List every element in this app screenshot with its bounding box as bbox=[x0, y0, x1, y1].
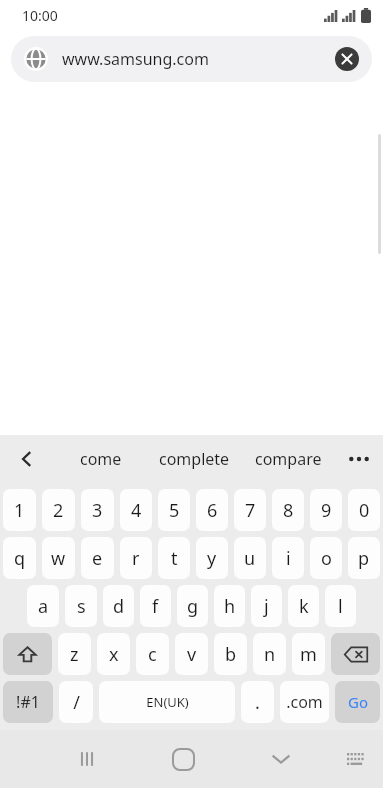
button[interactable]: 2 bbox=[42, 489, 75, 531]
button[interactable]: k bbox=[288, 585, 319, 627]
staticText: e bbox=[92, 546, 103, 571]
button[interactable]: 0 bbox=[348, 489, 380, 531]
button[interactable]: i bbox=[272, 537, 304, 579]
button[interactable]: a bbox=[27, 585, 59, 627]
staticText: / bbox=[73, 690, 80, 715]
staticText: 1 bbox=[14, 498, 25, 523]
button[interactable]: Change keyboard bbox=[329, 730, 383, 788]
button[interactable]: Recents bbox=[38, 730, 135, 788]
button[interactable]: 1 bbox=[3, 489, 36, 531]
button[interactable]: e bbox=[81, 537, 114, 579]
staticText: y bbox=[207, 546, 217, 571]
button[interactable]: u bbox=[234, 537, 266, 579]
staticText: w bbox=[51, 546, 66, 571]
staticText: v bbox=[187, 642, 197, 667]
staticText: . bbox=[255, 690, 260, 715]
button[interactable]: compare bbox=[241, 435, 335, 483]
button[interactable]: www.samsung.com bbox=[11, 36, 372, 82]
staticText: 3 bbox=[92, 498, 103, 523]
button[interactable]: !#1 bbox=[3, 681, 53, 723]
button[interactable]: v bbox=[175, 633, 208, 675]
staticText: k bbox=[299, 594, 309, 619]
staticText: 4 bbox=[131, 498, 142, 523]
staticText: f bbox=[152, 594, 159, 619]
button[interactable]: 5 bbox=[158, 489, 190, 531]
staticText: 7 bbox=[245, 498, 256, 523]
staticText: h bbox=[224, 594, 236, 619]
button[interactable]: x bbox=[97, 633, 130, 675]
staticText: compare bbox=[255, 448, 322, 470]
staticText: 6 bbox=[207, 498, 218, 523]
staticText: i bbox=[286, 546, 291, 571]
button[interactable]: d bbox=[103, 585, 134, 627]
button[interactable]: f bbox=[140, 585, 171, 627]
button[interactable]: q bbox=[3, 537, 36, 579]
staticText: u bbox=[244, 546, 256, 571]
button[interactable]: / bbox=[59, 681, 93, 723]
button[interactable]: b bbox=[214, 633, 247, 675]
button[interactable]: s bbox=[65, 585, 97, 627]
staticText: .com bbox=[286, 691, 323, 713]
staticText: b bbox=[225, 642, 237, 667]
staticText: complete bbox=[159, 448, 230, 470]
staticText: 10:00 bbox=[22, 6, 58, 25]
staticText: n bbox=[264, 642, 276, 667]
staticText: j bbox=[264, 594, 269, 619]
button[interactable]: EN(UK) bbox=[99, 681, 235, 723]
staticText: o bbox=[321, 546, 332, 571]
button[interactable]: Clear bbox=[334, 46, 360, 72]
staticText: p bbox=[358, 546, 370, 571]
button[interactable]: j bbox=[251, 585, 282, 627]
staticText: l bbox=[338, 594, 343, 619]
staticText: t bbox=[171, 546, 178, 571]
button[interactable]: Shift bbox=[3, 633, 52, 675]
button[interactable]: Go bbox=[335, 681, 380, 723]
staticText: a bbox=[38, 594, 49, 619]
button[interactable]: t bbox=[158, 537, 190, 579]
staticText: z bbox=[70, 642, 79, 667]
button[interactable]: Backspace bbox=[331, 633, 380, 675]
button[interactable]: 4 bbox=[120, 489, 152, 531]
button[interactable]: g bbox=[177, 585, 208, 627]
button[interactable]: r bbox=[120, 537, 152, 579]
button[interactable]: complete bbox=[147, 435, 241, 483]
button[interactable]: . bbox=[241, 681, 274, 723]
button[interactable]: h bbox=[214, 585, 245, 627]
button[interactable]: p bbox=[348, 537, 380, 579]
button[interactable]: 9 bbox=[310, 489, 342, 531]
button[interactable]: l bbox=[325, 585, 356, 627]
staticText: g bbox=[187, 594, 199, 619]
staticText: 5 bbox=[169, 498, 180, 523]
staticText: 0 bbox=[359, 498, 370, 523]
staticText: come bbox=[80, 448, 122, 470]
staticText: 2 bbox=[53, 498, 64, 523]
button[interactable]: 8 bbox=[272, 489, 304, 531]
button[interactable]: Hide keyboard bbox=[232, 730, 329, 788]
button[interactable]: o bbox=[310, 537, 342, 579]
button[interactable]: z bbox=[58, 633, 91, 675]
staticText: m bbox=[300, 642, 317, 667]
staticText: r bbox=[132, 546, 140, 571]
staticText: 9 bbox=[321, 498, 332, 523]
staticText: Go bbox=[348, 692, 368, 712]
button[interactable]: 7 bbox=[234, 489, 266, 531]
staticText: !#1 bbox=[16, 691, 40, 713]
button[interactable]: m bbox=[292, 633, 325, 675]
button[interactable]: More options bbox=[335, 435, 383, 483]
staticText: EN(UK) bbox=[146, 693, 189, 711]
staticText: d bbox=[113, 594, 125, 619]
staticText: c bbox=[148, 642, 157, 667]
staticText: x bbox=[109, 642, 119, 667]
button[interactable]: n bbox=[253, 633, 286, 675]
button[interactable]: Previous bbox=[0, 435, 54, 483]
staticText: s bbox=[77, 594, 86, 619]
button[interactable]: c bbox=[136, 633, 169, 675]
button[interactable]: Home bbox=[135, 730, 232, 788]
staticText: www.samsung.com bbox=[62, 48, 334, 70]
button[interactable]: .com bbox=[280, 681, 329, 723]
button[interactable]: 3 bbox=[81, 489, 114, 531]
button[interactable]: 6 bbox=[196, 489, 228, 531]
button[interactable]: come bbox=[54, 435, 147, 483]
button[interactable]: y bbox=[196, 537, 228, 579]
button[interactable]: w bbox=[42, 537, 75, 579]
